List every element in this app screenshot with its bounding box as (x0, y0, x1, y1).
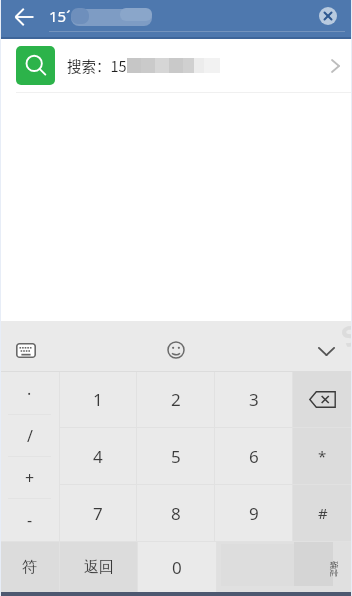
staticText: 搜索：15 (67, 55, 127, 76)
button[interactable]: 5 (137, 428, 214, 484)
staticText: 确定 (328, 560, 340, 578)
button[interactable]: Delete (293, 372, 352, 427)
staticText: * (318, 446, 327, 466)
button[interactable]: 6 (215, 428, 292, 484)
button[interactable]: 8 (137, 485, 214, 541)
button[interactable]: 2 (137, 372, 214, 427)
button[interactable]: * (293, 428, 352, 484)
button[interactable]: 搜索：15 (0, 39, 352, 92)
button[interactable]: - (0, 499, 59, 541)
button[interactable]: Emoji (152, 322, 200, 370)
button[interactable]: · (0, 372, 59, 415)
staticText: 符 (22, 558, 37, 577)
button[interactable]: 7 (60, 485, 136, 541)
button[interactable]: 4 (60, 428, 136, 484)
staticText: # (318, 503, 328, 523)
button[interactable]: + (0, 457, 59, 499)
staticText: 7 (93, 502, 103, 525)
staticText: - (27, 509, 33, 531)
button[interactable]: Back (0, 0, 48, 33)
staticText: 8 (171, 502, 181, 525)
button[interactable]: 0 (138, 542, 216, 592)
staticText: 4 (93, 445, 103, 468)
staticText: 15´ (49, 6, 71, 26)
button[interactable]: 符 (0, 542, 59, 592)
staticText: 3 (249, 388, 259, 411)
staticText: 2 (171, 388, 181, 411)
button[interactable]: 3 (215, 372, 292, 427)
button[interactable]: # (293, 485, 352, 541)
staticText: 6 (249, 445, 259, 468)
button[interactable]: Switch keyboard (4, 321, 48, 371)
button[interactable]: / (0, 415, 59, 457)
staticText: + (25, 467, 35, 489)
button[interactable]: Hide keyboard (300, 321, 352, 371)
staticText: S (336, 315, 352, 355)
button[interactable]: 1 (60, 372, 136, 427)
staticText: 5 (171, 445, 181, 468)
staticText: · (27, 383, 32, 405)
staticText: 0 (172, 556, 182, 579)
staticText: 返回 (84, 558, 114, 577)
button[interactable]: 返回 (60, 542, 137, 592)
staticText: / (27, 425, 33, 447)
staticText: 1 (93, 388, 103, 411)
button[interactable]: Clear text (305, 0, 350, 32)
button[interactable]: 确定 (217, 542, 352, 592)
staticText: 9 (249, 502, 259, 525)
button[interactable]: 9 (215, 485, 292, 541)
